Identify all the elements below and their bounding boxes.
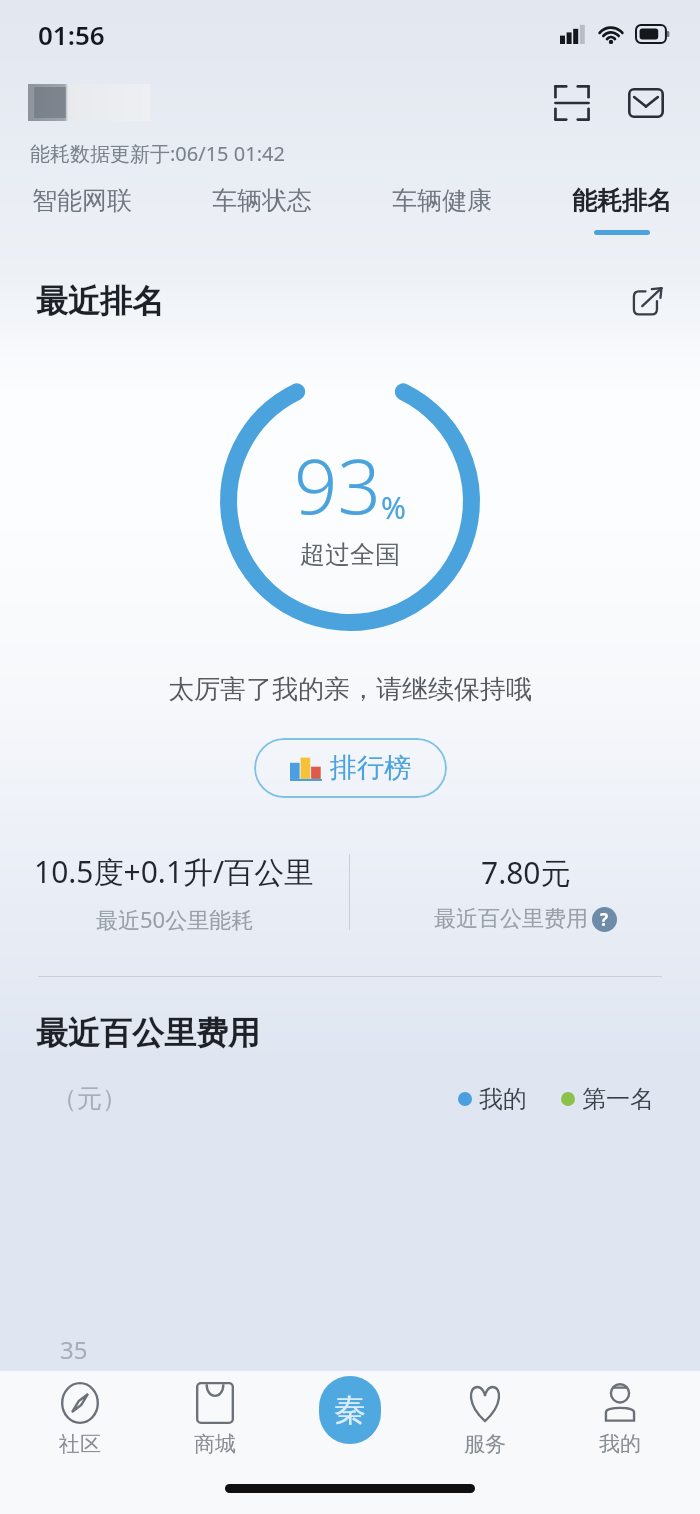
button[interactable]: 排行榜 (254, 738, 447, 798)
staticText: 01:56 (38, 17, 105, 52)
staticText: 我的 (599, 1431, 641, 1457)
button[interactable]: 社区 (25, 1376, 135, 1457)
staticText: 最近排名 (36, 281, 164, 321)
staticText: 最近百公里费用 (434, 905, 588, 933)
button[interactable]: 车辆健康 (390, 185, 494, 235)
staticText: 10.5度+0.1升/百公里 (34, 851, 315, 892)
staticText: 最近百公里费用 (36, 1013, 260, 1053)
staticText: 车辆健康 (392, 185, 492, 216)
staticText: 服务 (464, 1431, 506, 1457)
button[interactable]: Messages (620, 77, 672, 129)
staticText: 商城 (194, 1431, 236, 1457)
staticText: % (381, 487, 406, 528)
staticText: 35 (60, 1333, 88, 1366)
staticText: 93 (294, 433, 381, 537)
button[interactable]: Home (295, 1376, 405, 1444)
button[interactable] (28, 78, 150, 128)
button[interactable]: 服务 (430, 1376, 540, 1457)
button[interactable]: 我的 (565, 1376, 675, 1457)
staticText: 排行榜 (330, 751, 411, 785)
button[interactable]: Help (592, 907, 617, 932)
staticText: ? (600, 908, 609, 931)
staticText: 能耗数据更新于:06/15 01:42 (30, 140, 285, 167)
staticText: 太厉害了我的亲，请继续保持哦 (0, 673, 700, 706)
button[interactable]: 能耗排名 (570, 185, 674, 235)
staticText: 社区 (59, 1431, 101, 1457)
button[interactable]: Share (626, 279, 670, 323)
staticText: 超过全国 (300, 539, 400, 570)
button[interactable]: 车辆状态 (210, 185, 314, 235)
staticText: 第一名 (582, 1084, 654, 1114)
staticText: （元） (52, 1083, 127, 1114)
staticText: 秦 (334, 1390, 366, 1430)
staticText: 能耗排名 (572, 185, 672, 216)
staticText: 7.80元 (481, 852, 571, 893)
staticText: 最近50公里能耗 (96, 904, 254, 934)
button[interactable]: Scan (546, 77, 598, 129)
staticText: 智能网联 (32, 185, 132, 216)
button[interactable]: 商城 (160, 1376, 270, 1457)
button[interactable]: 智能网联 (30, 185, 134, 235)
staticText: 车辆状态 (212, 185, 312, 216)
staticText: 我的 (479, 1084, 527, 1114)
